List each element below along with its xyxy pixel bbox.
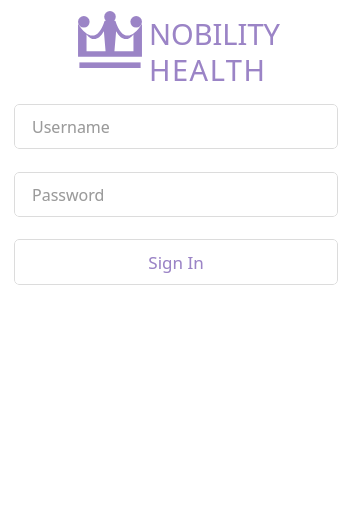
button[interactable]: Password: [14, 172, 338, 217]
staticText: Username: [32, 116, 110, 138]
button[interactable]: Username: [14, 104, 338, 149]
button[interactable]: Sign In: [14, 239, 338, 285]
staticText: Sign In: [148, 251, 204, 274]
staticText: HEALTH: [149, 50, 267, 89]
staticText: Password: [32, 184, 105, 206]
staticText: NOBILITY: [149, 14, 280, 53]
